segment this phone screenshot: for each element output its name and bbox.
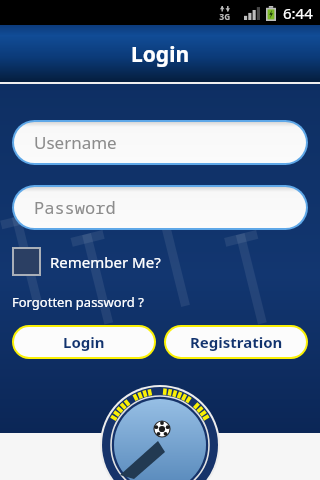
- button[interactable]: Remember Me?: [12, 245, 161, 278]
- button[interactable]: Forgotten password ?: [12, 291, 144, 313]
- staticText: Password: [34, 196, 116, 219]
- button[interactable]: Username: [14, 122, 306, 163]
- staticText: Login: [131, 40, 190, 69]
- staticText: Forgotten password ?: [12, 293, 144, 311]
- button[interactable]: Registration: [166, 327, 306, 357]
- staticText: 6:44: [283, 3, 313, 23]
- staticText: Username: [34, 131, 117, 154]
- staticText: Registration: [190, 332, 283, 352]
- staticText: Login: [63, 332, 105, 352]
- staticText: Remember Me?: [50, 252, 161, 272]
- button[interactable]: Password: [14, 187, 306, 228]
- button[interactable]: Login: [14, 327, 154, 357]
- staticText: 3G: [219, 10, 230, 22]
